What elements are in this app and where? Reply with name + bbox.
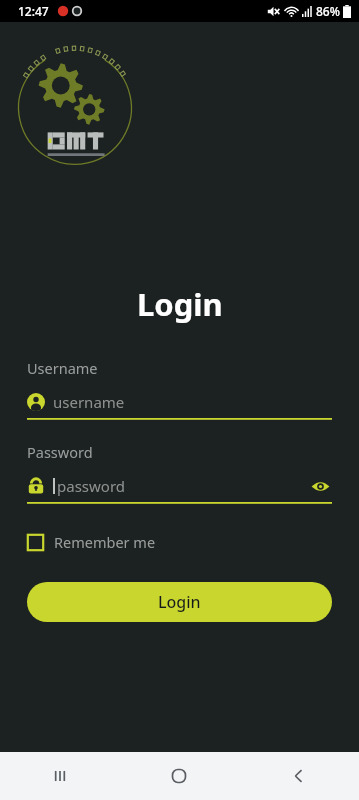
- staticText: 12:47: [18, 3, 49, 19]
- button[interactable]: Show password: [308, 474, 332, 498]
- staticText: password: [57, 476, 308, 496]
- staticText: Username: [27, 358, 98, 378]
- button[interactable]: Login: [27, 582, 332, 622]
- staticText: Login: [137, 283, 223, 325]
- staticText: 86%: [316, 3, 340, 19]
- staticText: Remember me: [54, 532, 156, 552]
- button[interactable]: password: [27, 474, 332, 504]
- staticText: Password: [27, 442, 93, 462]
- button[interactable]: username: [27, 390, 332, 420]
- button[interactable]: Recents: [0, 752, 119, 800]
- staticText: username: [53, 392, 332, 412]
- button[interactable]: Back: [239, 752, 359, 800]
- button[interactable]: Remember me: [27, 528, 156, 556]
- staticText: Login: [158, 591, 201, 613]
- button[interactable]: Home: [119, 752, 239, 800]
